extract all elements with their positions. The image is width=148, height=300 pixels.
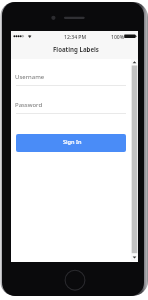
button[interactable]: Password <box>11 85 138 113</box>
button[interactable]: Scroll bar <box>131 59 138 261</box>
staticText: 100% <box>111 34 125 41</box>
button[interactable]: Sign In <box>16 134 126 152</box>
staticText: Username <box>15 73 45 81</box>
staticText: Sign In <box>63 138 82 146</box>
staticText: Floating Labels <box>53 45 99 53</box>
button[interactable]: Floating Labels <box>11 41 138 60</box>
staticText: Password <box>15 101 43 109</box>
button[interactable]: Username <box>11 59 138 85</box>
staticText: 12:34 PM <box>64 34 87 41</box>
